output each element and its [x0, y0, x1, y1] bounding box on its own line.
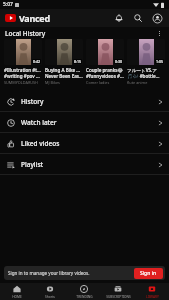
button[interactable]: TRENDING [67, 283, 101, 300]
staticText: Playlist [21, 160, 44, 169]
button[interactable]: Account [150, 11, 164, 25]
button[interactable]: Sign in [134, 268, 163, 279]
button[interactable]: HOME [0, 283, 33, 300]
staticText: Liked videos [21, 139, 60, 148]
button[interactable]: Watch later [0, 112, 169, 133]
button[interactable]: 0:42 [4, 39, 42, 85]
staticText: 5:07 [3, 1, 13, 8]
button[interactable]: Sign in to manage your library videos. [4, 266, 165, 280]
staticText: HOME [12, 295, 22, 299]
button[interactable]: 0:30 [86, 39, 124, 85]
staticText: Comer ladies [86, 80, 110, 85]
button[interactable]: 8:15 [45, 39, 83, 85]
staticText: SUBSCRIPTIONS [106, 295, 131, 299]
button[interactable]: More options [154, 28, 165, 39]
button[interactable]: Search [131, 11, 145, 25]
staticText: #writing #pov #pro… [4, 73, 42, 79]
staticText: LIBRARY [146, 295, 159, 299]
staticText: Local History [5, 29, 46, 38]
staticText: Buying A Bike Has [45, 67, 83, 73]
staticText: Shorts [45, 295, 55, 299]
staticText: Sign in to manage your library videos. [8, 270, 90, 276]
staticText: 8:15 [74, 59, 81, 64]
staticText: Watch later [21, 118, 57, 127]
button[interactable]: Notifications [112, 11, 126, 25]
staticText: 🎵🎶 #bottle… [127, 73, 160, 79]
staticText: 0:42 [33, 59, 40, 64]
button[interactable]: LIBRARY [135, 283, 169, 300]
button[interactable]: Liked videos [0, 133, 169, 154]
button[interactable]: 1:05 [127, 39, 165, 85]
staticText: SUMMYOLDARUSH [4, 80, 38, 85]
staticText: Sign in [140, 270, 157, 277]
staticText: MJ Bikes [45, 80, 60, 85]
button[interactable]: Playlist [0, 154, 169, 175]
staticText: 1:05 [156, 59, 163, 64]
staticText: #funnyvideos #f… [86, 73, 124, 79]
staticText: flute anime [127, 80, 148, 85]
button[interactable]: History [0, 91, 169, 112]
staticText: Never Been Easier! [45, 73, 83, 79]
staticText: Couple pranks😂 [86, 67, 123, 73]
button[interactable]: Shorts [33, 283, 67, 300]
button[interactable]: SUBSCRIPTIONS [101, 283, 135, 300]
staticText: Vanced [19, 12, 50, 24]
staticText: History [21, 97, 44, 106]
staticText: 0:30 [115, 59, 122, 64]
staticText: #Illustration #tattoo [4, 67, 42, 73]
staticText: TRENDING [76, 295, 93, 299]
staticText: フルートVS.ア [127, 67, 158, 73]
